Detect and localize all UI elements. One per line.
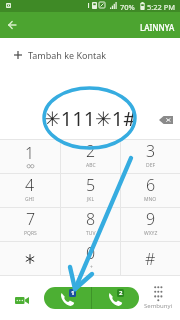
button[interactable]: 5 [61,174,120,207]
staticText: 3 [146,140,156,162]
staticText: ✳111✳1# [44,105,137,132]
button[interactable]: Video call [8,286,36,314]
staticText: WXYZ [144,230,158,237]
button[interactable] [0,242,60,275]
staticText: DEF [146,162,156,169]
staticText: 4 [25,174,35,196]
staticText: + [90,264,93,271]
button[interactable]: 7 [0,208,60,241]
button[interactable]: 6 [121,174,180,207]
staticText: 5 [86,174,96,196]
staticText: 1 [71,289,75,297]
button[interactable]: 0 [61,242,120,275]
button[interactable]: 4 [0,174,60,207]
staticText: GHI [25,196,35,203]
button[interactable]: 8 [61,208,120,241]
staticText: 70% [120,2,135,12]
button[interactable]: Tambah ke Kontak [0,38,180,72]
button[interactable]: 9 [121,208,180,241]
staticText: Sembunyi [144,302,173,310]
button[interactable]: 3 [121,140,180,173]
staticText: 0 [86,242,96,264]
staticText: # [145,248,156,270]
staticText: Tambah ke Kontak [28,49,107,61]
staticText: 1 [25,142,35,164]
button[interactable]: 1 [0,140,60,173]
button[interactable]: Call with SIM 1 [44,287,91,309]
staticText: 9 [146,208,156,230]
staticText: 5:22 PM [147,2,176,12]
button[interactable]: LAINNYA [140,22,175,33]
staticText: MNO [144,196,157,203]
staticText: 2 [119,289,123,297]
staticText: 7 [26,208,36,230]
button[interactable]: Back [1,14,23,36]
staticText: 2 [86,140,96,162]
staticText: PQRS [24,230,37,237]
staticText: 8 [86,208,96,230]
button[interactable]: Hide keypad [143,286,173,310]
button[interactable]: 2 [61,140,120,173]
button[interactable]: Call with SIM 2 [92,287,139,309]
staticText: LAINNYA [140,22,175,33]
button[interactable]: Backspace [156,110,176,130]
staticText: TUV [86,230,96,237]
button[interactable]: # [121,242,180,275]
staticText: 6 [146,174,156,196]
staticText: JKL [87,196,95,203]
staticText: ABC [86,162,96,169]
